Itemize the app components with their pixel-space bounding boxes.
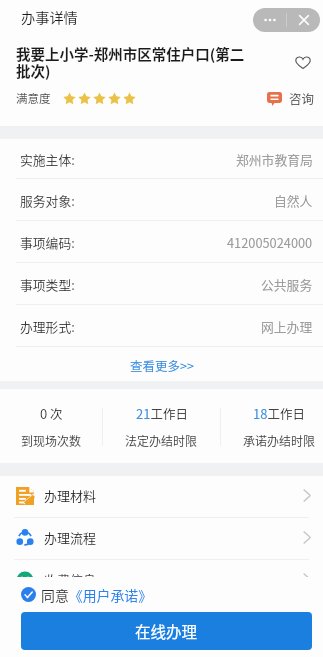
- staticText: 21工作日: [136, 404, 188, 423]
- button[interactable]: 18工作日: [228, 404, 323, 449]
- button[interactable]: 办理流程: [0, 518, 323, 560]
- staticText: 承诺办结时限: [243, 432, 316, 449]
- staticText: 满意度: [16, 90, 51, 107]
- staticText: 办理材料: [44, 486, 97, 505]
- staticText: 办理形式:: [20, 317, 75, 336]
- button[interactable]: 办理材料: [0, 476, 323, 518]
- staticText: 18工作日: [253, 404, 305, 423]
- staticText: 412005024000: [227, 233, 313, 252]
- button[interactable]: 0 次: [0, 404, 102, 449]
- staticText: 办事详情: [21, 7, 78, 28]
- staticText: 我要上小学-郑州市区常住户口(第二 批次): [16, 43, 261, 81]
- staticText: 办理流程: [44, 528, 97, 547]
- button[interactable]: 收费信息: [0, 560, 323, 602]
- button[interactable]: 查看更多>>: [0, 347, 323, 381]
- button[interactable]: 收藏: [288, 47, 318, 77]
- staticText: 事项类型:: [20, 275, 75, 294]
- staticText: 自然人: [274, 191, 313, 210]
- staticText: 查看更多>>: [130, 356, 194, 374]
- button[interactable]: 21工作日: [103, 404, 220, 449]
- staticText: 法定办结时限: [125, 432, 198, 449]
- staticText: 同意《用户承诺》: [41, 585, 153, 605]
- button[interactable]: 更多和关闭: [253, 8, 320, 32]
- staticText: 网上办理: [261, 317, 313, 336]
- staticText: 事项编码:: [20, 233, 75, 252]
- staticText: 0 次: [40, 404, 63, 423]
- staticText: 咨询: [289, 89, 315, 107]
- staticText: 服务对象:: [20, 191, 75, 210]
- staticText: 到现场次数: [21, 432, 82, 449]
- staticText: 收费信息: [44, 570, 97, 589]
- button[interactable]: 咨询: [265, 89, 315, 107]
- button[interactable]: 在线办理: [21, 612, 312, 650]
- button[interactable]: 同意《用户承诺》: [21, 577, 323, 612]
- staticText: 实施主体:: [20, 150, 75, 169]
- staticText: 公共服务: [261, 275, 313, 294]
- staticText: 郑州市教育局: [236, 150, 313, 169]
- staticText: 在线办理: [135, 620, 198, 642]
